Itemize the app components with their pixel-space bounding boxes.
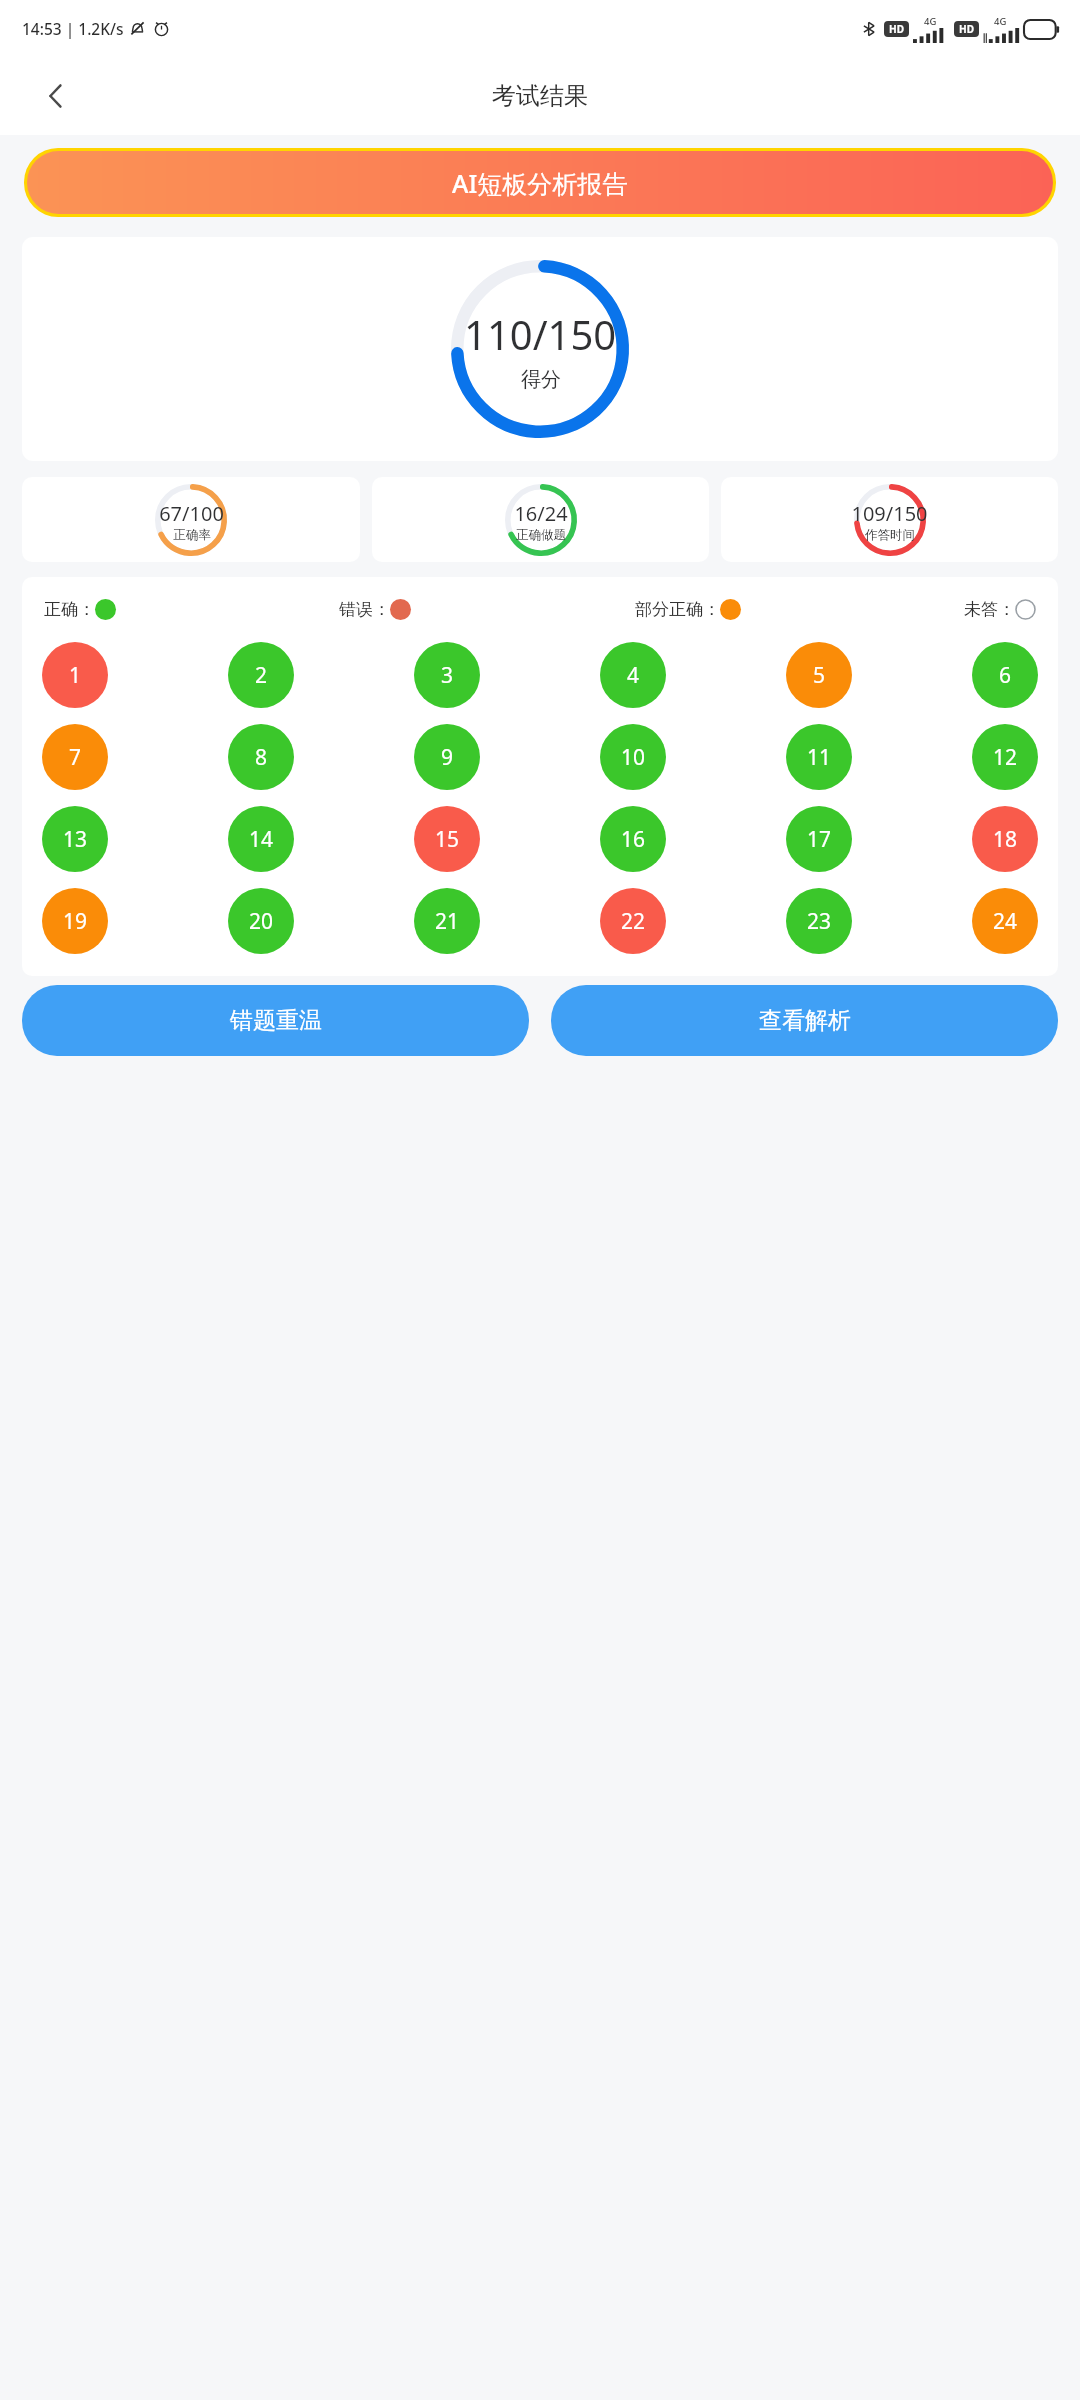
staticText: 7 bbox=[69, 743, 82, 772]
staticText: 14 bbox=[249, 825, 274, 854]
button[interactable]: 12 bbox=[972, 724, 1038, 790]
button[interactable]: 20 bbox=[228, 888, 294, 954]
staticText: 9 bbox=[441, 743, 454, 772]
button[interactable]: 16/24 bbox=[372, 477, 709, 562]
staticText: 21 bbox=[435, 907, 460, 936]
staticText: 14:53 | 1.2K/s bbox=[22, 18, 124, 39]
button[interactable]: 7 bbox=[42, 724, 108, 790]
button[interactable]: 14 bbox=[228, 806, 294, 872]
staticText: 正确率 bbox=[173, 527, 211, 543]
staticText: 17 bbox=[807, 825, 832, 854]
staticText: 13 bbox=[63, 825, 88, 854]
staticText: HD bbox=[889, 22, 904, 36]
staticText: AI短板分析报告 bbox=[452, 166, 628, 200]
button[interactable]: 17 bbox=[786, 806, 852, 872]
staticText: 24 bbox=[993, 907, 1018, 936]
button[interactable]: 9 bbox=[414, 724, 480, 790]
staticText: 16/24 bbox=[514, 500, 568, 527]
staticText: 109/150 bbox=[851, 500, 928, 527]
staticText: 正确： bbox=[44, 599, 95, 620]
button[interactable]: 1 bbox=[42, 642, 108, 708]
staticText: 4G bbox=[924, 15, 937, 28]
staticText: 20 bbox=[249, 907, 274, 936]
staticText: 15 bbox=[435, 825, 460, 854]
staticText: 18 bbox=[993, 825, 1018, 854]
staticText: 作答时间 bbox=[865, 527, 915, 543]
staticText: 12 bbox=[993, 743, 1018, 772]
staticText: 得分 bbox=[521, 367, 561, 392]
staticText: 正确做题 bbox=[516, 527, 566, 543]
staticText: 19 bbox=[63, 907, 88, 936]
staticText: 11 bbox=[807, 743, 832, 772]
button[interactable]: 2 bbox=[228, 642, 294, 708]
staticText: 部分正确： bbox=[635, 599, 720, 620]
button[interactable]: 22 bbox=[600, 888, 666, 954]
staticText: 错题重温 bbox=[230, 1006, 322, 1035]
button[interactable]: 5 bbox=[786, 642, 852, 708]
staticText: 6 bbox=[999, 661, 1012, 690]
button[interactable]: 3 bbox=[414, 642, 480, 708]
button[interactable]: 8 bbox=[228, 724, 294, 790]
staticText: 查看解析 bbox=[759, 1006, 851, 1035]
button[interactable]: 16 bbox=[600, 806, 666, 872]
staticText: 错误： bbox=[339, 599, 390, 620]
staticText: 考试结果 bbox=[492, 81, 588, 111]
button[interactable]: 6 bbox=[972, 642, 1038, 708]
staticText: 22 bbox=[621, 907, 646, 936]
staticText: 2 bbox=[255, 661, 268, 690]
staticText: HD bbox=[959, 22, 974, 36]
staticText: 10 bbox=[621, 743, 646, 772]
staticText: 3 bbox=[441, 661, 454, 690]
button[interactable]: 24 bbox=[972, 888, 1038, 954]
button[interactable]: Back bbox=[34, 74, 78, 118]
button[interactable]: 23 bbox=[786, 888, 852, 954]
staticText: 67/100 bbox=[159, 500, 224, 527]
button[interactable]: 67/100 bbox=[22, 477, 360, 562]
button[interactable]: 错题重温 bbox=[22, 985, 529, 1056]
button[interactable]: AI短板分析报告 bbox=[27, 151, 1053, 214]
staticText: 4G bbox=[994, 15, 1007, 28]
button[interactable]: 15 bbox=[414, 806, 480, 872]
staticText: 1 bbox=[69, 661, 82, 690]
button[interactable]: 11 bbox=[786, 724, 852, 790]
staticText: 110/150 bbox=[464, 307, 617, 361]
button[interactable]: 13 bbox=[42, 806, 108, 872]
button[interactable]: 109/150 bbox=[721, 477, 1058, 562]
staticText: 5 bbox=[813, 661, 826, 690]
button[interactable]: 10 bbox=[600, 724, 666, 790]
button[interactable]: 查看解析 bbox=[551, 985, 1058, 1056]
staticText: 4 bbox=[627, 661, 640, 690]
button[interactable]: 19 bbox=[42, 888, 108, 954]
button[interactable]: 18 bbox=[972, 806, 1038, 872]
staticText: 未答： bbox=[964, 599, 1015, 620]
staticText: 16 bbox=[621, 825, 646, 854]
staticText: 8 bbox=[255, 743, 268, 772]
staticText: 23 bbox=[807, 907, 832, 936]
button[interactable]: 4 bbox=[600, 642, 666, 708]
button[interactable]: 21 bbox=[414, 888, 480, 954]
